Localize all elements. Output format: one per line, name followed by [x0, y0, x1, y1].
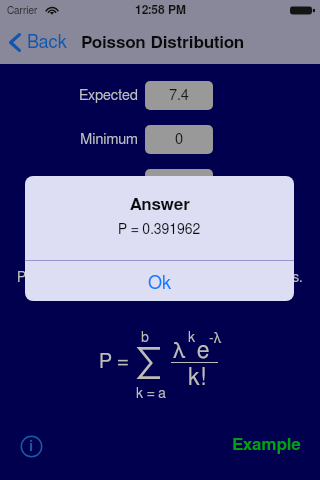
- staticText: P =: [99, 352, 129, 372]
- staticText: Poisson Distribution: [81, 34, 245, 51]
- staticText: e: [197, 340, 210, 363]
- staticText: 0: [175, 132, 184, 147]
- staticText: Probability of between Min and Max succe…: [17, 271, 303, 285]
- staticText: λ: [173, 340, 186, 363]
- staticText: i: [29, 439, 34, 454]
- staticText: Minimum: [80, 132, 138, 147]
- button[interactable]: Ok: [25, 261, 294, 301]
- staticText: Carrier: [7, 6, 38, 16]
- button[interactable]: 12: [145, 169, 213, 198]
- staticText: 12:58 PM: [135, 4, 187, 16]
- button[interactable]: Example: [232, 436, 301, 453]
- staticText: Expected: [79, 88, 138, 103]
- button[interactable]: Info: [15, 430, 48, 463]
- button[interactable]: 0: [145, 125, 213, 154]
- staticText: Answer: [130, 196, 190, 213]
- staticText: 7.4: [169, 88, 189, 103]
- button[interactable]: Back: [0, 28, 77, 57]
- staticText: Back: [27, 34, 67, 52]
- staticText: P = 0.391962: [118, 223, 201, 237]
- staticText: k: [188, 331, 196, 345]
- button[interactable]: 7.4: [145, 81, 213, 110]
- staticText: Ok: [148, 275, 172, 293]
- staticText: k!: [188, 367, 208, 390]
- staticText: Example: [232, 436, 301, 453]
- staticText: k = a: [136, 387, 166, 401]
- staticText: -λ: [209, 332, 222, 346]
- staticText: b: [141, 331, 149, 345]
